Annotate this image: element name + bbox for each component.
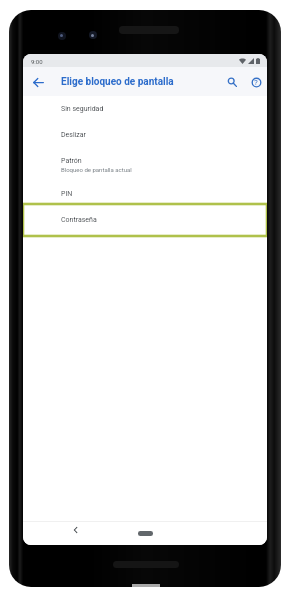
button[interactable]: Back xyxy=(28,72,48,92)
staticText: PIN xyxy=(61,190,73,198)
button[interactable]: Patrón xyxy=(23,149,267,181)
staticText: Deslizar xyxy=(61,131,86,139)
button[interactable]: Sin seguridad xyxy=(23,96,267,122)
button[interactable]: Help xyxy=(246,72,266,92)
staticText: Contraseña xyxy=(61,216,97,224)
button[interactable]: Back xyxy=(68,523,82,537)
button[interactable]: Home xyxy=(138,531,153,536)
button[interactable]: Deslizar xyxy=(23,122,267,148)
staticText: Sin seguridad xyxy=(61,105,104,113)
staticText: 9:00 xyxy=(31,58,43,65)
button[interactable]: PIN xyxy=(23,182,267,206)
staticText: Elige bloqueo de pantalla xyxy=(61,76,174,88)
button[interactable]: Search xyxy=(222,72,242,92)
staticText: ? xyxy=(254,78,258,87)
button[interactable]: Contraseña xyxy=(23,204,267,236)
staticText: Patrón xyxy=(61,157,82,165)
staticText: Bloqueo de pantalla actual xyxy=(61,166,132,173)
